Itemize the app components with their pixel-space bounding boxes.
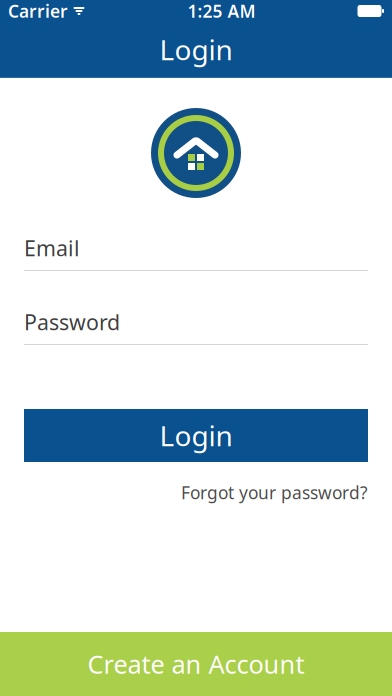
staticText: Login — [159, 31, 232, 68]
button[interactable]: Login — [24, 409, 368, 462]
staticText: Password — [24, 308, 120, 336]
button[interactable]: Create an Account — [0, 632, 392, 696]
staticText: Carrier — [8, 0, 68, 22]
button[interactable]: Forgot your password? — [181, 475, 368, 510]
staticText: Email — [24, 234, 80, 262]
staticText: Login — [159, 417, 232, 454]
staticText: 1:25 AM — [187, 0, 255, 22]
staticText: Forgot your password? — [181, 481, 368, 504]
staticText: Create an Account — [87, 647, 304, 681]
